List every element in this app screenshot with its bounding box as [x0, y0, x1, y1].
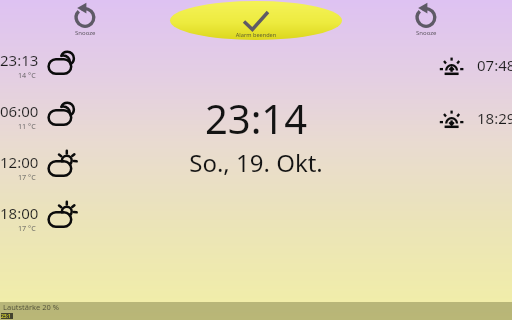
staticText: 06:00	[0, 101, 39, 121]
staticText: Snooze	[75, 29, 96, 37]
staticText: 18:00	[0, 203, 39, 223]
staticText: 17 °C	[18, 223, 36, 233]
button[interactable]: Lautstärke 20 %	[0, 302, 512, 320]
staticText: 07:48	[477, 55, 512, 75]
staticText: 23:13	[0, 50, 39, 70]
staticText: 23:14	[0, 91, 512, 145]
staticText: Snooze	[416, 29, 437, 37]
staticText: 23:14	[1, 313, 13, 319]
button[interactable]: Snooze	[403, 1, 449, 38]
staticText: 12:00	[0, 152, 39, 172]
staticText: Alarm beenden	[170, 31, 342, 39]
staticText: Lautstärke 20 %	[3, 302, 60, 312]
button[interactable]: Alarm beenden	[170, 1, 342, 40]
staticText: So., 19. Okt.	[0, 146, 512, 179]
staticText: 18:29	[477, 108, 512, 128]
button[interactable]: Snooze	[62, 1, 108, 38]
staticText: 17 °C	[18, 172, 36, 182]
staticText: 11 °C	[18, 121, 36, 131]
staticText: 14 °C	[18, 70, 36, 80]
